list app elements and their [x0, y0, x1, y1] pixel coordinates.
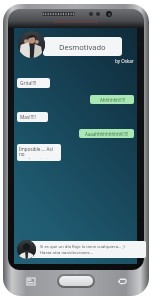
button[interactable]: Back: [111, 274, 131, 288]
button[interactable]: Si es que un día flojo lo tiene cualquie…: [27, 241, 146, 258]
staticText: Ahhhhhh!!!!!: [100, 97, 125, 103]
staticText: by Oskar: [115, 58, 134, 64]
button[interactable]: Home: [59, 276, 93, 286]
button[interactable]: Mas!!!!!: [17, 112, 48, 122]
staticText: Imposible.... Así no puedo matarte.: [19, 146, 59, 159]
button[interactable]: Profile photo: [18, 31, 45, 58]
staticText: Desmotivado: [59, 42, 106, 52]
staticText: Grita!!!!: [20, 80, 37, 87]
staticText: Aaaahhhhhhhhhh!!!!!: [85, 131, 129, 137]
staticText: Mas!!!!!: [20, 114, 36, 121]
button[interactable]: Grita!!!!: [17, 78, 50, 88]
staticText: Si es que un día flojo lo tiene cualquie…: [40, 244, 125, 255]
button[interactable]: Ahhhhhh!!!!!: [90, 95, 134, 104]
button[interactable]: Menu: [21, 274, 41, 288]
staticText: www.stockconsto.com: [0, 19, 152, 24]
button[interactable]: Aaaahhhhhhhhhh!!!!!: [79, 129, 134, 138]
button[interactable]: Imposible.... Así no puedo matarte.: [17, 144, 61, 161]
button[interactable]: Desmotivado: [43, 37, 122, 56]
button[interactable]: Contact photo: [17, 240, 36, 259]
